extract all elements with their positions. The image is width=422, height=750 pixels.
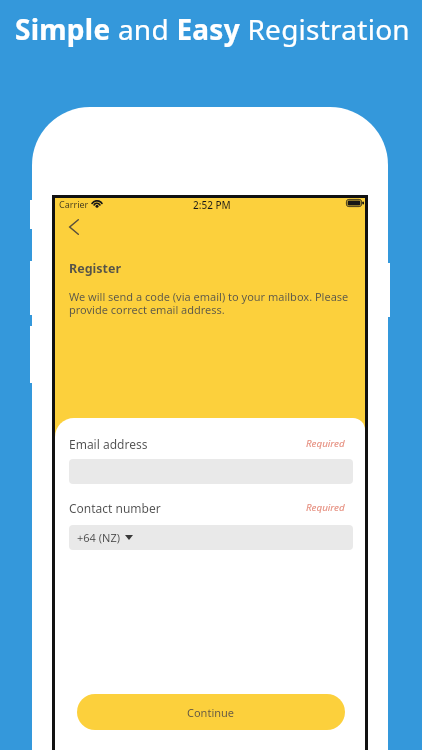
staticText: Register <box>69 260 122 277</box>
staticText: We will send a code (via email) to your … <box>69 289 356 317</box>
staticText: Carrier <box>59 198 89 210</box>
staticText: Contact number <box>69 500 161 516</box>
staticText: 2:52 PM <box>193 198 231 212</box>
button[interactable]: Continue <box>77 694 345 730</box>
staticText: Required <box>306 437 345 450</box>
staticText: Continue <box>187 705 235 720</box>
staticText: Email address <box>69 436 148 452</box>
staticText: Simple and Easy Registration <box>15 10 410 48</box>
button[interactable]: Back <box>60 213 88 241</box>
staticText: Required <box>306 501 345 514</box>
button[interactable]: +64 (NZ) <box>69 525 353 550</box>
staticText: +64 (NZ) <box>77 530 120 545</box>
